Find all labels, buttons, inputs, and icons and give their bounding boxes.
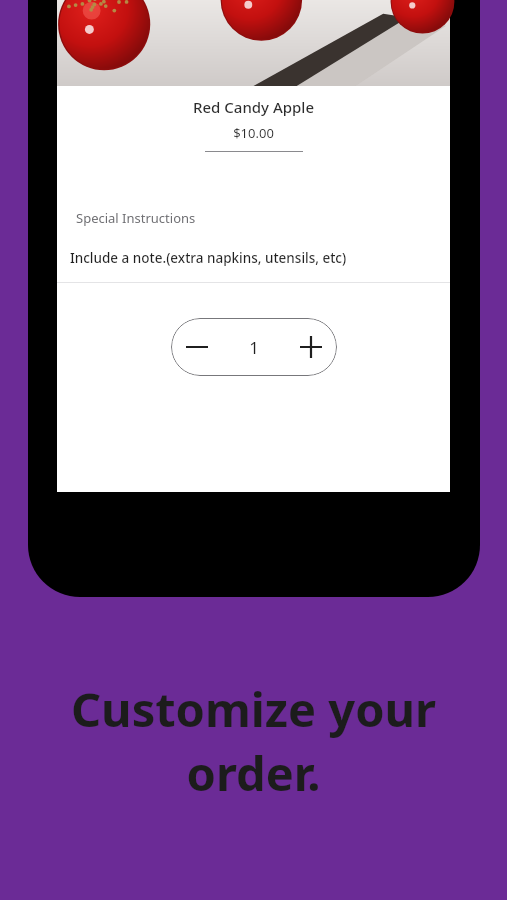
- staticText: Customize your: [0, 677, 507, 741]
- button[interactable]: Decrease quantity: [171, 318, 223, 376]
- staticText: 1: [249, 336, 259, 359]
- button[interactable]: Include a note.(extra napkins, utensils,…: [57, 249, 450, 267]
- staticText: Special Instructions: [76, 209, 196, 227]
- staticText: order.: [0, 741, 507, 805]
- staticText: Red Candy Apple: [57, 97, 450, 117]
- button[interactable]: Increase quantity: [285, 318, 337, 376]
- staticText: $10.00: [57, 124, 450, 142]
